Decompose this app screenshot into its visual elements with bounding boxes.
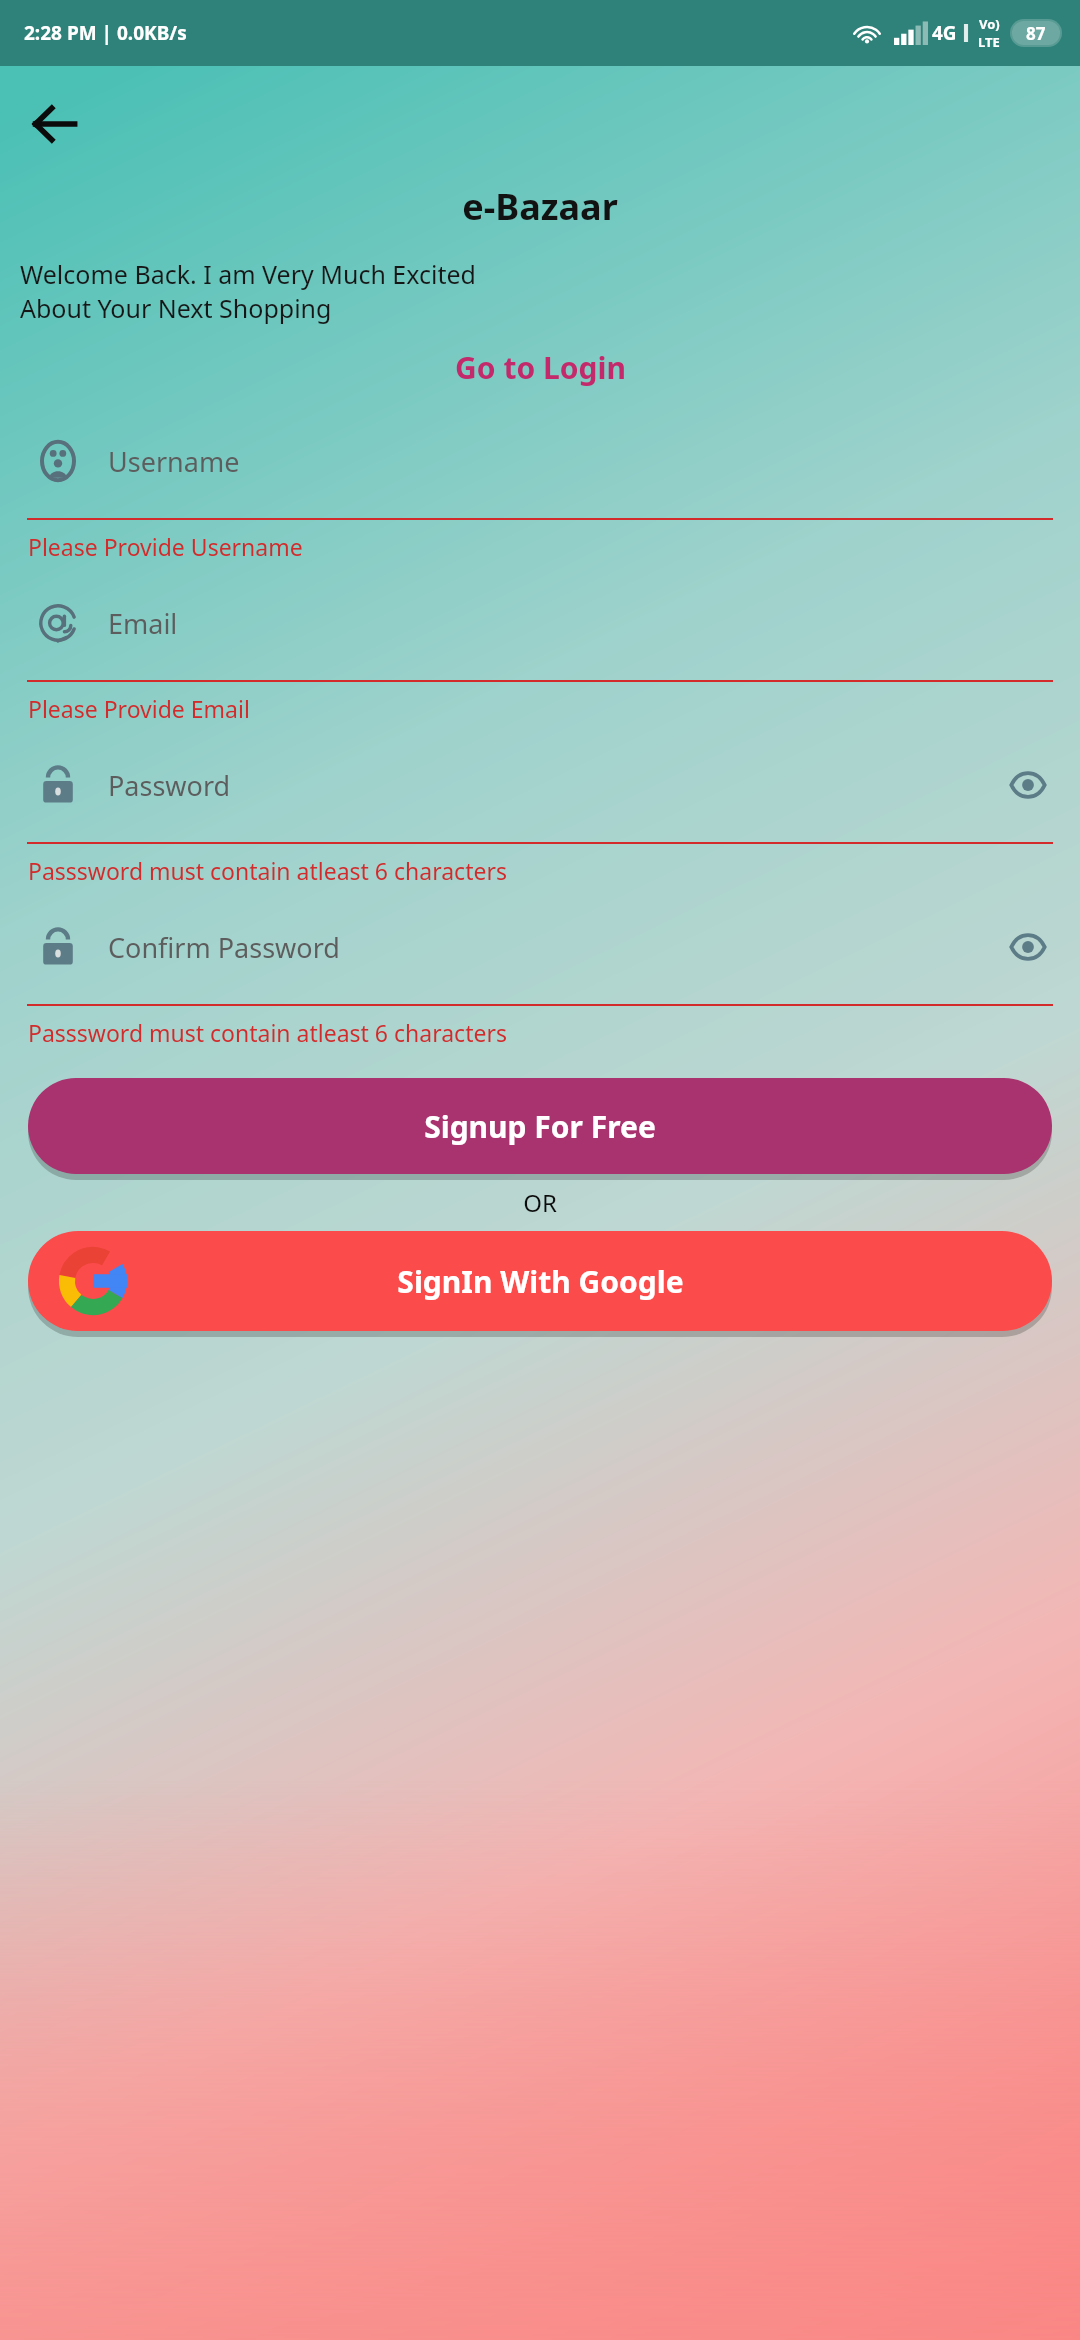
button[interactable]: Back [18, 88, 90, 160]
staticText: 87 [1026, 22, 1046, 45]
button[interactable]: Username [0, 430, 1080, 562]
button[interactable]: SignIn With Google [28, 1231, 1052, 1331]
button[interactable]: Confirm Password [0, 916, 1080, 1048]
button[interactable]: Toggle password visibility [1006, 925, 1050, 969]
staticText: Password [108, 767, 1006, 804]
button[interactable]: Email [0, 592, 1080, 724]
button[interactable]: Password [0, 754, 1080, 886]
staticText: Welcome Back. I am Very Much Excited Abo… [20, 257, 1062, 325]
staticText: 4G [932, 20, 957, 46]
staticText: Signup For Free [424, 1106, 656, 1147]
staticText: Confirm Password [108, 929, 1006, 966]
staticText: Please Provide Email [28, 693, 250, 724]
staticText: OR [0, 1186, 1080, 1219]
staticText: Go to Login [455, 347, 626, 388]
button[interactable]: Toggle password visibility [1006, 763, 1050, 807]
staticText: Please Provide Username [28, 531, 303, 562]
staticText: Passsword must contain atleast 6 charact… [28, 855, 507, 886]
staticText: LTE [978, 33, 1000, 51]
button[interactable]: Go to Login [0, 347, 1080, 388]
staticText: SignIn With Google [397, 1261, 684, 1302]
staticText: Email [108, 605, 1050, 642]
staticText: 2:28 PM | 0.0KB/s [24, 20, 187, 46]
staticText: Passsword must contain atleast 6 charact… [28, 1017, 507, 1048]
staticText: e-Bazaar [0, 182, 1080, 231]
button[interactable]: Signup For Free [28, 1078, 1052, 1174]
staticText: Username [108, 443, 1050, 480]
staticText: Vo) [979, 15, 1000, 33]
